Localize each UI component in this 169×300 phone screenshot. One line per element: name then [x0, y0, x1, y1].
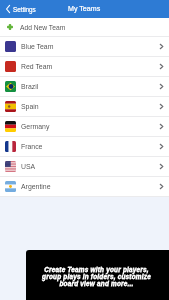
button[interactable]: Settings [0, 5, 40, 13]
staticText: Argentine [21, 183, 51, 191]
staticText: France [21, 143, 43, 151]
button[interactable]: Add New Team [0, 18, 169, 36]
button[interactable]: Red Team [0, 57, 169, 76]
staticText: Brazil [21, 83, 39, 91]
staticText: Red Team [21, 63, 53, 71]
button[interactable]: Blue Team [0, 37, 169, 56]
button[interactable]: USA [0, 157, 169, 176]
staticText: Germany [21, 123, 50, 131]
button[interactable]: Argentine [0, 177, 169, 196]
staticText: Blue Team [21, 43, 54, 51]
staticText: Spain [21, 103, 39, 111]
staticText: My Teams [68, 5, 101, 13]
button[interactable]: Create Teams with your players, group pl… [26, 250, 169, 300]
button[interactable]: France [0, 137, 169, 156]
button[interactable]: Brazil [0, 77, 169, 96]
staticText: USA [21, 163, 36, 171]
button[interactable]: Germany [0, 117, 169, 136]
staticText: Settings [13, 6, 36, 13]
button[interactable]: Spain [0, 97, 169, 116]
staticText: Add New Team [20, 24, 66, 31]
staticText: Create Teams with your players, group pl… [42, 266, 151, 287]
